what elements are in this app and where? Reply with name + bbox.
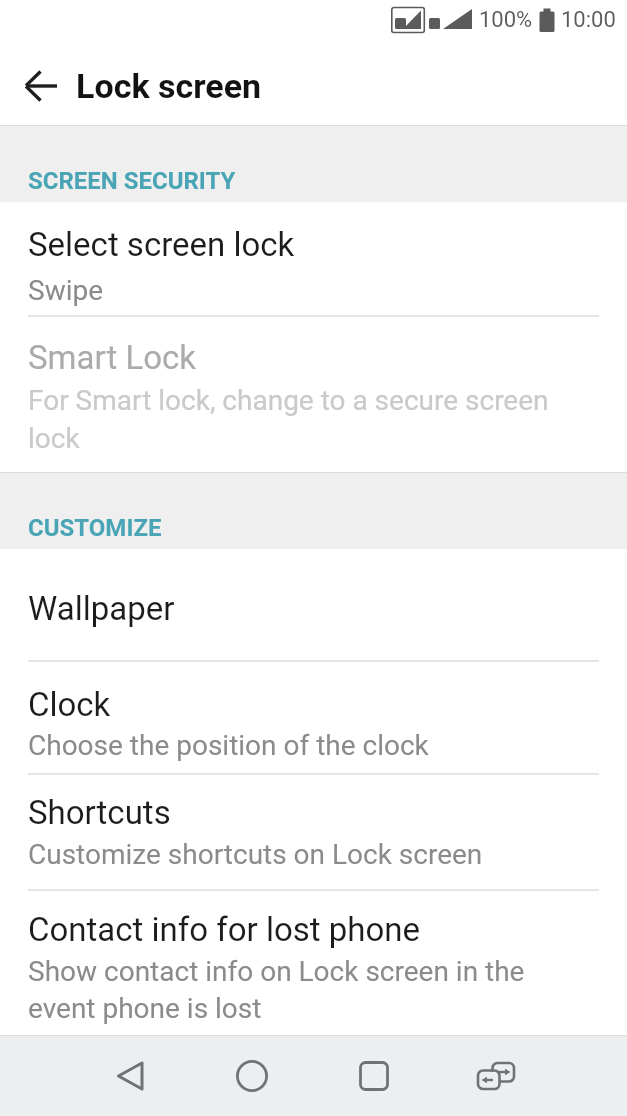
button[interactable]: Contact info for lost phone (0, 891, 627, 1035)
button[interactable]: Smart Lock (0, 317, 627, 472)
staticText: 10:00 (561, 7, 616, 33)
button[interactable]: Shortcuts (0, 775, 627, 889)
staticText: CUSTOMIZE (28, 514, 162, 542)
staticText: Shortcuts (28, 793, 171, 832)
button[interactable] (9, 56, 75, 116)
staticText: Contact info for lost phone (28, 910, 421, 949)
staticText: SCREEN SECURITY (28, 167, 236, 195)
staticText: For Smart lock, change to a secure scree… (28, 384, 549, 455)
staticText: Smart Lock (28, 338, 197, 377)
button[interactable]: Select screen lock (0, 202, 627, 315)
staticText: Wallpaper (28, 589, 175, 628)
button[interactable]: Clock (0, 662, 627, 773)
staticText: Choose the position of the clock (28, 729, 429, 762)
button[interactable] (102, 1047, 160, 1105)
button[interactable] (467, 1047, 525, 1105)
button[interactable] (345, 1047, 403, 1105)
button[interactable] (223, 1047, 281, 1105)
staticText: Lock screen (76, 66, 262, 106)
button[interactable]: Wallpaper (0, 549, 627, 660)
staticText: Select screen lock (28, 225, 295, 264)
staticText: Customize shortcuts on Lock screen (28, 838, 483, 871)
staticText: Clock (28, 685, 111, 724)
staticText: Swipe (28, 274, 104, 307)
staticText: 100% (479, 7, 533, 33)
staticText: Show contact info on Lock screen in the … (28, 955, 525, 1025)
